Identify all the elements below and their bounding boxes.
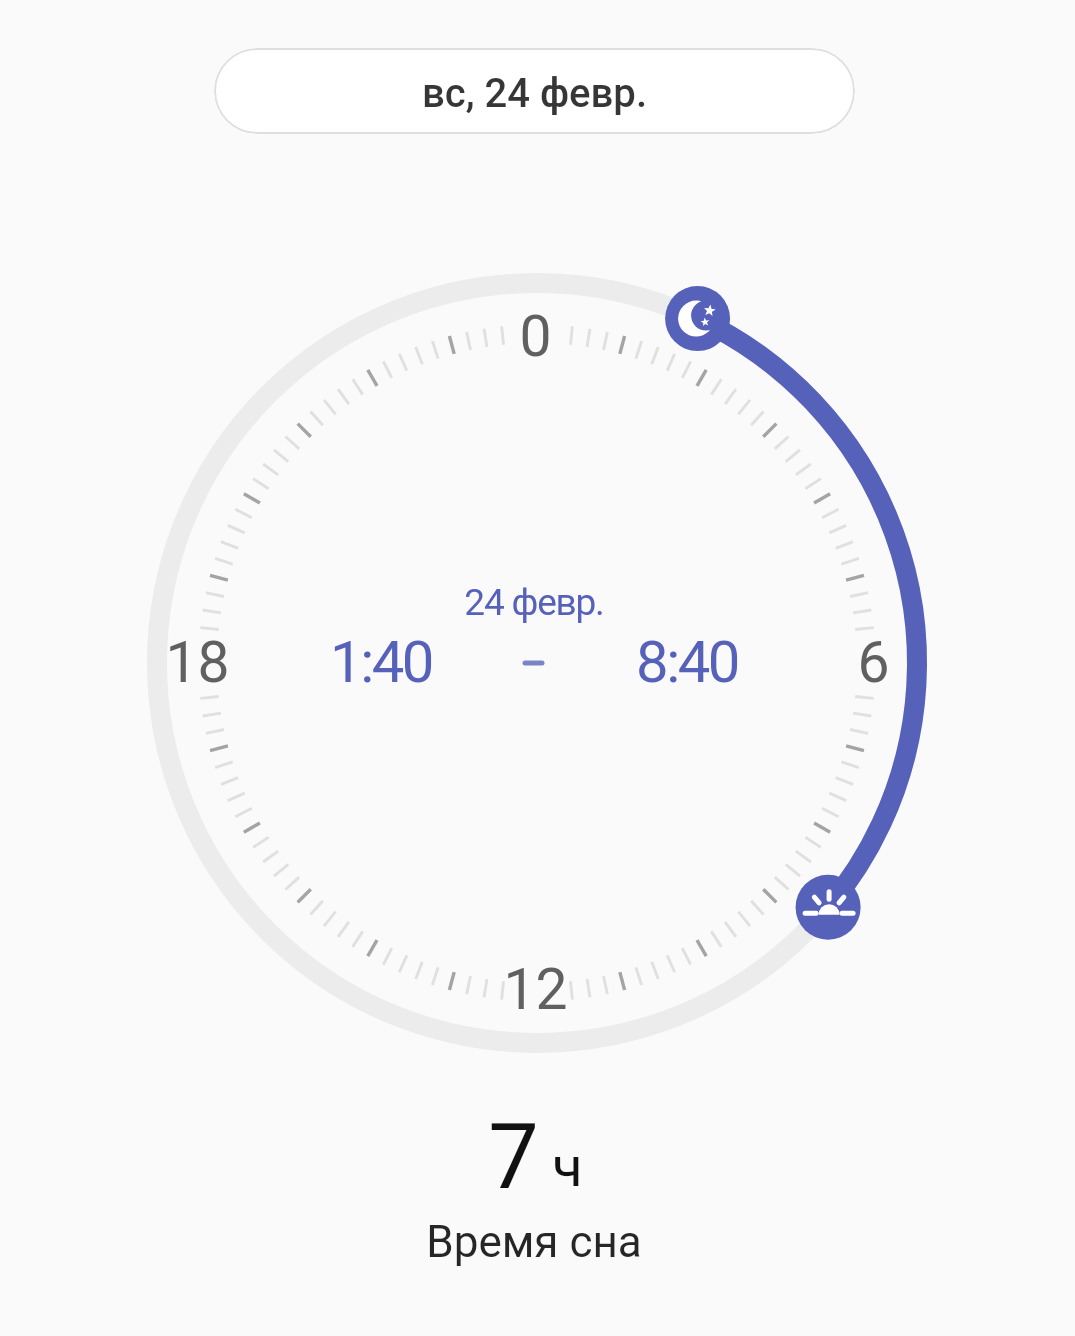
staticText: 7: [488, 1105, 539, 1210]
staticText: 1:40: [330, 628, 432, 696]
staticText: 0: [519, 303, 552, 370]
button[interactable]: [666, 287, 730, 351]
button[interactable]: вс, 24 февр.: [214, 48, 855, 134]
staticText: 6: [857, 629, 890, 696]
staticText: Время сна: [426, 1216, 642, 1268]
staticText: 24 февр.: [464, 581, 604, 624]
staticText: ч: [552, 1134, 583, 1200]
staticText: вс, 24 февр.: [422, 70, 648, 117]
staticText: 8:40: [636, 628, 738, 696]
staticText: 12: [503, 956, 568, 1023]
staticText: 18: [165, 629, 230, 696]
button[interactable]: [796, 875, 860, 939]
